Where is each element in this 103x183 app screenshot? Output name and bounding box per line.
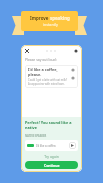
staticText: Please say out loud: <box>25 57 57 62</box>
staticText: A cappuccino with extra foam. <box>28 82 65 86</box>
button[interactable]: Play audio <box>70 67 75 72</box>
staticText: NATIVE SPEAKER <box>25 134 47 138</box>
staticText: speaking <box>50 15 70 21</box>
staticText: Could I get a latte with oat milk? <box>28 78 68 82</box>
staticText: Perfect! You sound like a native <box>25 120 78 130</box>
button[interactable]: Close <box>24 48 30 54</box>
staticText: I'd like a coffee, please. <box>28 67 68 77</box>
staticText: instantly <box>43 22 58 27</box>
button[interactable]: Settings <box>73 48 79 54</box>
staticText: Improve <box>30 15 50 21</box>
button[interactable]: Play <box>69 142 76 149</box>
button[interactable]: Slow audio <box>70 75 75 80</box>
staticText: I'd like a coffee. <box>36 144 57 148</box>
button[interactable]: Continue <box>25 161 78 169</box>
staticText: Continue <box>44 163 60 168</box>
button[interactable]: Try again <box>25 154 78 159</box>
